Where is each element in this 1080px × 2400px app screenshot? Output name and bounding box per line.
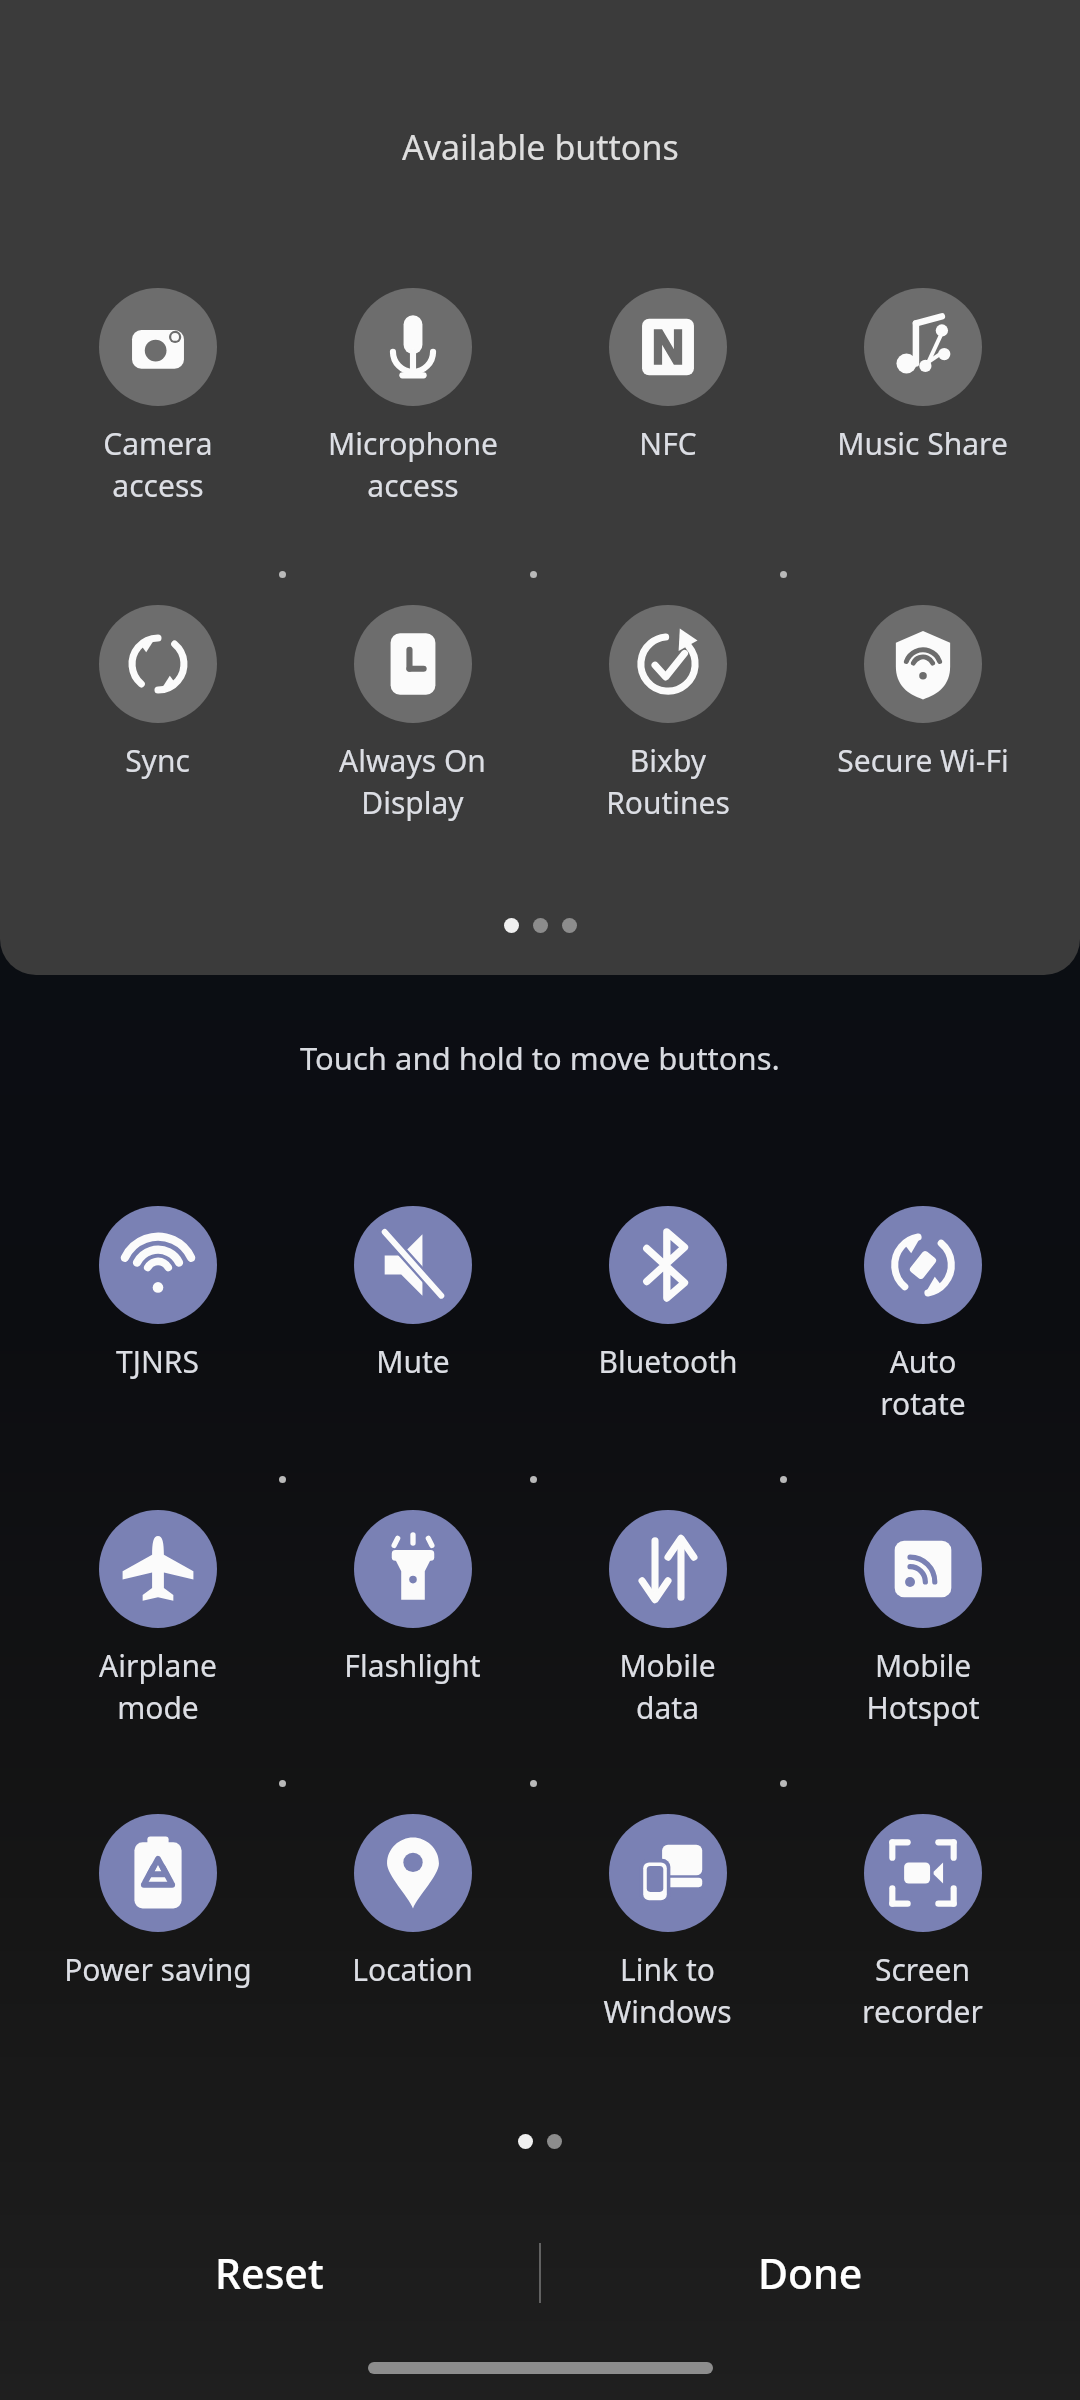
button[interactable]: Location — [285, 1814, 540, 1990]
button[interactable]: Music Share — [795, 288, 1050, 464]
button[interactable]: Mute — [285, 1206, 540, 1382]
staticText: Camera access — [103, 423, 213, 506]
staticText: Mobile data — [619, 1645, 716, 1728]
button[interactable]: TJNRS — [30, 1206, 285, 1382]
other: Link to Windows — [609, 1814, 727, 1932]
other: Bixby Routines — [609, 605, 727, 723]
button[interactable]: Reset — [0, 2215, 539, 2330]
button[interactable]: Microphone access — [285, 288, 540, 506]
button[interactable]: Sync — [30, 605, 285, 781]
other: Music Share — [864, 288, 982, 406]
other: Auto rotate — [864, 1206, 982, 1324]
staticText: Mobile Hotspot — [866, 1645, 980, 1728]
other: TJNRS — [99, 1206, 217, 1324]
staticText: Screen recorder — [862, 1949, 983, 2032]
staticText: Location — [352, 1949, 473, 1990]
staticText: Bluetooth — [598, 1341, 738, 1382]
staticText: Music Share — [837, 423, 1008, 464]
button[interactable]: Mobile Hotspot — [795, 1510, 1050, 1728]
other: Sync — [99, 605, 217, 723]
other: Mute — [354, 1206, 472, 1324]
staticText: Secure Wi-Fi — [837, 740, 1009, 781]
other: Microphone access — [354, 288, 472, 406]
staticText: Mute — [376, 1341, 450, 1382]
other: Location — [354, 1814, 472, 1932]
other: Flashlight — [354, 1510, 472, 1628]
button[interactable]: Secure Wi-Fi — [795, 605, 1050, 781]
button[interactable]: Bluetooth — [540, 1206, 795, 1382]
button[interactable]: Done — [541, 2215, 1080, 2330]
other: Camera access — [99, 288, 217, 406]
staticText: Bixby Routines — [606, 740, 730, 823]
staticText: Link to Windows — [603, 1949, 732, 2032]
staticText: NFC — [639, 423, 697, 464]
other: Airplane mode — [99, 1510, 217, 1628]
staticText: Always On Display — [339, 740, 486, 823]
other: Screen recorder — [864, 1814, 982, 1932]
staticText: TJNRS — [116, 1341, 199, 1382]
staticText: Reset — [215, 2245, 324, 2301]
button[interactable]: Mobile data — [540, 1510, 795, 1728]
staticText: Flashlight — [344, 1645, 481, 1686]
button[interactable]: NFC — [540, 288, 795, 464]
other: Bluetooth — [609, 1206, 727, 1324]
button[interactable]: Always On Display — [285, 605, 540, 823]
staticText: Airplane mode — [99, 1645, 217, 1728]
staticText: Available buttons — [402, 124, 679, 170]
button[interactable]: Airplane mode — [30, 1510, 285, 1728]
button[interactable]: Bixby Routines — [540, 605, 795, 823]
staticText: Touch and hold to move buttons. — [300, 1037, 780, 1079]
staticText: Auto rotate — [880, 1341, 966, 1424]
button[interactable]: Screen recorder — [795, 1814, 1050, 2032]
button[interactable]: Link to Windows — [540, 1814, 795, 2032]
other: Always On Display — [354, 605, 472, 723]
other: Mobile Hotspot — [864, 1510, 982, 1628]
staticText: Microphone access — [328, 423, 498, 506]
button[interactable]: Auto rotate — [795, 1206, 1050, 1424]
other: NFC — [609, 288, 727, 406]
other: Secure Wi-Fi — [864, 605, 982, 723]
staticText: Sync — [125, 740, 190, 781]
button[interactable]: Camera access — [30, 288, 285, 506]
other: Mobile data — [609, 1510, 727, 1628]
button[interactable]: Flashlight — [285, 1510, 540, 1686]
staticText: Power saving — [64, 1949, 252, 1990]
staticText: Done — [758, 2245, 863, 2301]
other: Power saving — [99, 1814, 217, 1932]
button[interactable]: Power saving — [30, 1814, 285, 1990]
